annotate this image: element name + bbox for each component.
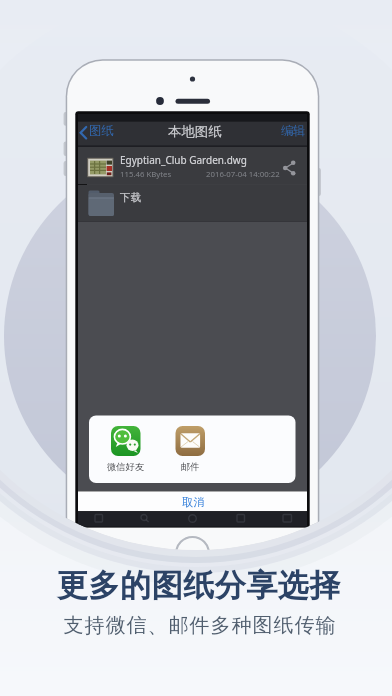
staticText: 图纸 — [89, 123, 115, 139]
button[interactable] — [169, 422, 207, 474]
staticText: 取消 — [182, 495, 205, 509]
button[interactable] — [78, 491, 307, 511]
button[interactable] — [78, 122, 122, 147]
staticText: 微信好友 — [107, 461, 145, 473]
staticText: 编辑 — [281, 123, 306, 138]
staticText: 本地图纸 — [168, 123, 222, 140]
staticText: 支持微信、邮件多种图纸传输 — [63, 613, 336, 638]
staticText: 更多的图纸分享选择 — [57, 566, 341, 605]
button[interactable] — [277, 122, 307, 147]
staticText: 2016-07-04 14:00:22 — [206, 169, 280, 180]
button[interactable] — [78, 147, 307, 185]
staticText: 下载 — [120, 191, 141, 204]
staticText: 邮件 — [181, 461, 200, 473]
staticText: 115.46 KBytes — [120, 169, 172, 180]
staticText: Egyptian_Club Garden.dwg — [120, 153, 247, 167]
button[interactable] — [78, 185, 307, 222]
button[interactable] — [107, 422, 145, 474]
